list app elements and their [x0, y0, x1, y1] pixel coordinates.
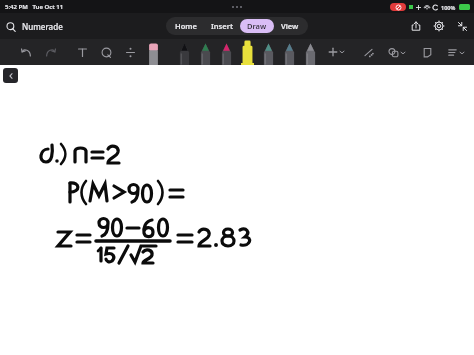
staticText: Insert	[211, 21, 233, 31]
button[interactable]: Selection	[358, 42, 378, 62]
button[interactable]: Text	[72, 42, 92, 62]
staticText: Draw	[247, 21, 267, 31]
button[interactable]: Insert	[204, 19, 240, 33]
button[interactable]: Pen tool	[260, 39, 277, 65]
button[interactable]: Insert	[120, 42, 140, 62]
button[interactable]: Pen tool	[197, 39, 214, 65]
staticText: 100%	[441, 4, 456, 11]
button[interactable]: Pen tool	[218, 39, 235, 65]
button[interactable]: Share	[410, 20, 422, 32]
button[interactable]: View	[274, 19, 306, 33]
button[interactable]: Draw	[240, 19, 274, 33]
button[interactable]: Shapes	[386, 47, 407, 58]
button[interactable]: Settings	[433, 20, 445, 32]
button[interactable]: Undo	[16, 42, 36, 62]
button[interactable]: Pen tool	[239, 39, 256, 65]
button[interactable]: Note	[417, 42, 437, 62]
staticText: 5:42 PM Tue Oct 11	[5, 3, 64, 11]
button[interactable]: Pen tool	[176, 39, 193, 65]
staticText: View	[281, 21, 299, 31]
button[interactable]: Pen tool	[145, 39, 162, 65]
button[interactable]: Home	[168, 19, 204, 33]
button[interactable]: Lasso select	[96, 42, 116, 62]
button[interactable]: Pen tool	[281, 39, 298, 65]
button[interactable]: Collapse	[456, 20, 468, 32]
button[interactable]: Back	[3, 68, 18, 83]
staticText: Numerade	[22, 21, 63, 32]
button[interactable]: Add pen	[326, 47, 346, 57]
button[interactable]: Layers	[445, 47, 466, 58]
staticText: Home	[175, 21, 197, 31]
button[interactable]: Pen tool	[302, 39, 319, 65]
button[interactable]: Search	[6, 21, 63, 32]
other: Search	[6, 22, 16, 32]
button[interactable]: Redo	[40, 42, 60, 62]
